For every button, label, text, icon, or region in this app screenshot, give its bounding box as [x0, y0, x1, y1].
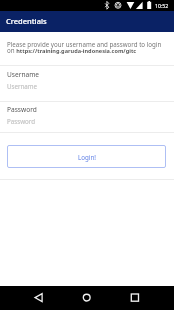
button[interactable]: Recents: [111, 286, 174, 310]
staticText: Password: [7, 117, 35, 125]
button[interactable]: Password: [0, 102, 174, 132]
staticText: Username: [7, 70, 40, 79]
button[interactable]: Username: [0, 66, 174, 101]
button[interactable]: Login!: [7, 145, 166, 168]
button[interactable]: Back: [0, 286, 63, 310]
staticText: Password: [7, 105, 37, 114]
staticText: Please provide your username and passwor…: [7, 40, 169, 55]
staticText: Login!: [78, 153, 96, 161]
staticText: 10:52: [155, 2, 169, 9]
button[interactable]: Home: [63, 286, 111, 310]
staticText: Username: [7, 82, 38, 90]
staticText: Credentials: [6, 16, 47, 26]
